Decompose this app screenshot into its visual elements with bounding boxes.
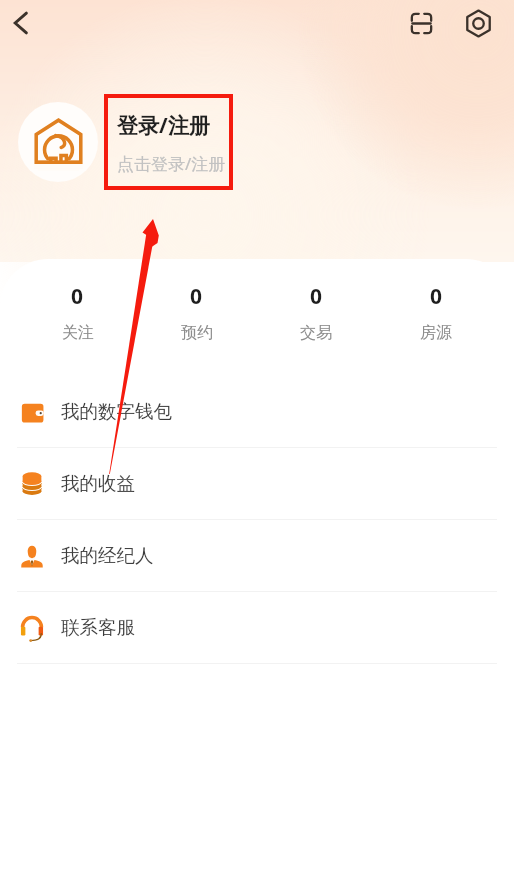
staticText: 我的经纪人	[61, 544, 154, 567]
button[interactable]: 我的数字钱包	[0, 376, 514, 448]
staticText: 联系客服	[61, 616, 135, 639]
staticText: 登录/注册	[117, 111, 210, 140]
staticText: 关注	[62, 323, 94, 343]
button[interactable]: 联系客服	[0, 592, 514, 664]
button[interactable]: 我的收益	[0, 448, 514, 520]
button[interactable]: 我的经纪人	[0, 520, 514, 592]
staticText: 0	[310, 282, 323, 311]
button[interactable]: 登录/注册	[104, 94, 233, 190]
button[interactable]: Scan QR code	[399, 1, 443, 45]
button[interactable]: 0	[376, 282, 496, 343]
staticText: 0	[71, 282, 84, 311]
button[interactable]: Back	[0, 1, 44, 45]
button[interactable]: Settings	[456, 1, 500, 45]
button[interactable]: 0	[18, 282, 137, 343]
button[interactable]: Profile picture	[18, 102, 98, 182]
staticText: 0	[190, 282, 203, 311]
staticText: 房源	[420, 323, 452, 343]
button[interactable]: 0	[137, 282, 256, 343]
staticText: 我的数字钱包	[61, 400, 172, 423]
button[interactable]: 0	[256, 282, 376, 343]
staticText: 点击登录/注册	[117, 152, 226, 175]
staticText: 交易	[300, 323, 332, 343]
staticText: 预约	[181, 323, 213, 343]
staticText: 0	[430, 282, 443, 311]
staticText: 我的收益	[61, 472, 135, 495]
